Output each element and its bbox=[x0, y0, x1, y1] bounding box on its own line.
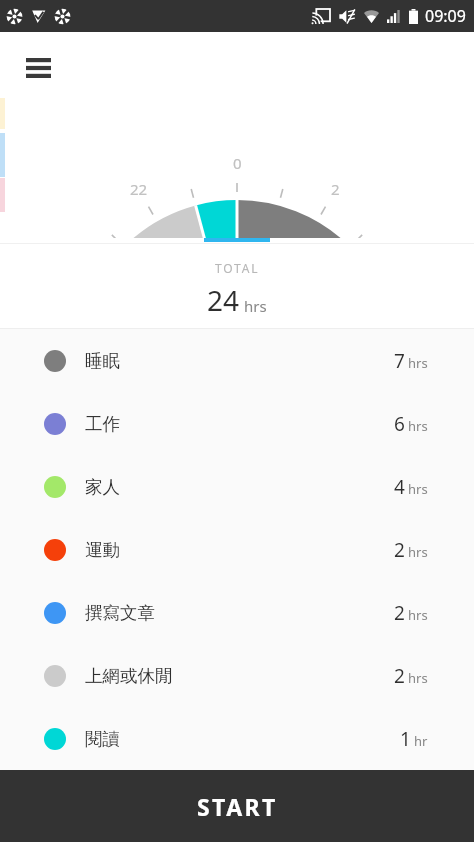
button[interactable]: 工作 bbox=[0, 392, 474, 455]
staticText: 工作 bbox=[85, 413, 120, 435]
button[interactable]: START bbox=[0, 770, 474, 842]
staticText: START bbox=[197, 791, 278, 822]
button[interactable]: 閱讀 bbox=[0, 707, 474, 770]
staticText: hrs bbox=[408, 480, 428, 498]
staticText: hrs bbox=[244, 296, 267, 316]
staticText: hrs bbox=[408, 669, 428, 687]
staticText: hrs bbox=[408, 606, 428, 624]
staticText: 1 bbox=[400, 726, 411, 752]
button[interactable]: Open navigation menu bbox=[14, 44, 62, 92]
button[interactable]: 運動 bbox=[0, 518, 474, 581]
staticText: 2 bbox=[394, 537, 405, 563]
staticText: hr bbox=[414, 732, 428, 750]
staticText: 上網或休閒 bbox=[85, 665, 173, 687]
staticText: 4 bbox=[394, 474, 405, 500]
staticText: 2 bbox=[394, 663, 405, 689]
staticText: 22 bbox=[130, 179, 148, 199]
staticText: 閱讀 bbox=[85, 728, 120, 750]
button[interactable]: 睡眠 bbox=[0, 329, 474, 392]
button[interactable]: 上網或休閒 bbox=[0, 644, 474, 707]
staticText: hrs bbox=[408, 354, 428, 372]
staticText: 運動 bbox=[85, 539, 120, 561]
staticText: 睡眠 bbox=[85, 350, 120, 372]
button[interactable]: 家人 bbox=[0, 455, 474, 518]
staticText: 撰寫文章 bbox=[85, 602, 155, 624]
staticText: 家人 bbox=[85, 476, 120, 498]
staticText: TOTAL bbox=[215, 260, 260, 276]
staticText: 0 bbox=[233, 153, 242, 173]
staticText: hrs bbox=[408, 417, 428, 435]
button[interactable]: 撰寫文章 bbox=[0, 581, 474, 644]
staticText: 2 bbox=[331, 179, 340, 199]
staticText: 24 bbox=[207, 281, 240, 319]
staticText: hrs bbox=[408, 543, 428, 561]
staticText: 09:09 bbox=[425, 5, 466, 27]
staticText: 6 bbox=[394, 411, 405, 437]
staticText: 7 bbox=[394, 348, 405, 374]
staticText: 2 bbox=[394, 600, 405, 626]
